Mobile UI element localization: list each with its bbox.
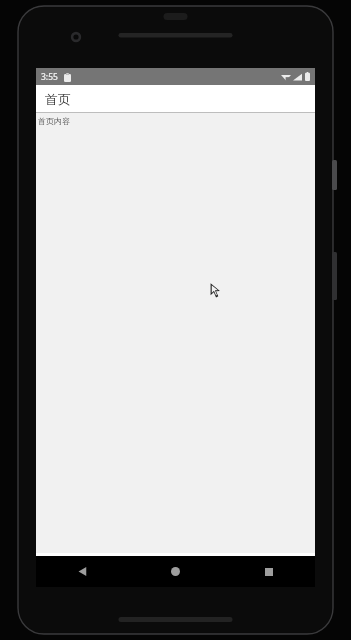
button[interactable]: Back [36,556,129,587]
staticText: 首页 [45,91,71,107]
staticText: 3:55 [41,71,58,83]
button[interactable]: Home [129,556,222,587]
button[interactable]: Recent apps [222,556,315,587]
staticText: 首页内容 [38,116,70,126]
